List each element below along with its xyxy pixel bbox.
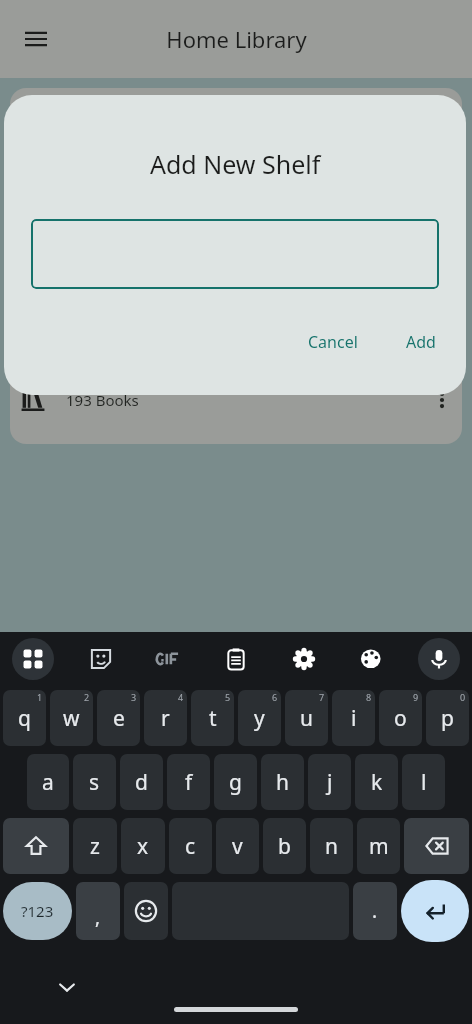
staticText: x	[137, 832, 149, 861]
button[interactable]: g	[214, 754, 257, 810]
button[interactable]: j	[308, 754, 351, 810]
staticText: 3	[131, 691, 137, 703]
button[interactable]: x	[121, 818, 165, 874]
button[interactable]: Backspace	[404, 818, 469, 874]
staticText: y	[254, 704, 265, 733]
button[interactable]: Themes	[350, 638, 392, 680]
button[interactable]: y	[238, 690, 281, 746]
button[interactable]: Settings	[283, 638, 325, 680]
staticText: r	[161, 704, 170, 733]
staticText: v	[232, 832, 243, 861]
button[interactable]: Voice input	[418, 638, 460, 680]
staticText: n	[325, 832, 338, 861]
button[interactable]: a	[27, 754, 69, 810]
staticText: 9	[413, 691, 419, 703]
button[interactable]: h	[261, 754, 304, 810]
staticText: m	[369, 832, 389, 861]
staticText: e	[113, 704, 125, 733]
button[interactable]: r	[144, 690, 187, 746]
button[interactable]: Shift	[3, 818, 69, 874]
button[interactable]: l	[402, 754, 445, 810]
staticText: 193 Books	[66, 390, 139, 410]
staticText: 6	[272, 691, 278, 703]
button[interactable]: z	[73, 818, 117, 874]
staticText: s	[89, 768, 100, 797]
staticText: o	[394, 704, 407, 733]
button[interactable]: t	[191, 690, 234, 746]
button[interactable]: u	[285, 690, 328, 746]
button[interactable]: w	[50, 690, 93, 746]
button[interactable]: m	[357, 818, 400, 874]
staticText: q	[18, 704, 31, 733]
button[interactable]: o	[379, 690, 422, 746]
button[interactable]: v	[216, 818, 259, 874]
staticText: 5	[225, 691, 231, 703]
button[interactable]: f	[167, 754, 210, 810]
staticText: f	[185, 768, 193, 797]
staticText: i	[351, 704, 357, 733]
staticText: 0	[460, 691, 466, 703]
staticText: Add New Shelf	[150, 147, 321, 181]
button[interactable]: Enter	[401, 880, 469, 942]
button[interactable]: 193 Books	[10, 88, 462, 444]
staticText: t	[209, 704, 217, 733]
button[interactable]: Clipboard	[215, 638, 257, 680]
staticText: p	[441, 704, 454, 733]
button[interactable]	[31, 219, 439, 289]
button[interactable]: Cancel	[300, 325, 366, 359]
staticText: k	[371, 768, 383, 797]
staticText: 4	[178, 691, 184, 703]
staticText: j	[327, 768, 333, 797]
button[interactable]: k	[355, 754, 398, 810]
button[interactable]: p	[426, 690, 469, 746]
button[interactable]: i	[332, 690, 375, 746]
button[interactable]: n	[310, 818, 353, 874]
staticText: Add	[406, 331, 436, 353]
button[interactable]: s	[73, 754, 116, 810]
button[interactable]: Stickers	[80, 638, 122, 680]
button[interactable]: e	[97, 690, 140, 746]
staticText: Home Library	[166, 24, 307, 54]
button[interactable]: .	[353, 882, 397, 940]
staticText: b	[278, 832, 291, 861]
staticText: g	[229, 768, 242, 797]
staticText: 8	[366, 691, 372, 703]
button[interactable]: Hide keyboard	[48, 968, 86, 1006]
staticText: .	[372, 898, 378, 924]
staticText: u	[300, 704, 313, 733]
button[interactable]: d	[120, 754, 163, 810]
button[interactable]: q	[3, 690, 46, 746]
button[interactable]: Add	[398, 325, 444, 359]
staticText: Cancel	[308, 331, 358, 353]
staticText: w	[63, 704, 80, 733]
staticText: c	[185, 832, 196, 861]
staticText: ?123	[21, 901, 54, 921]
button[interactable]: ,	[76, 882, 120, 940]
button[interactable]: Open navigation menu	[14, 17, 58, 61]
button[interactable]: Keyboard modes	[12, 638, 54, 680]
staticText: h	[276, 768, 289, 797]
button[interactable]: Emoji	[124, 882, 168, 940]
staticText: a	[42, 768, 54, 797]
staticText: 2	[84, 691, 90, 703]
staticText: ,	[95, 904, 101, 930]
button[interactable]: GIF	[147, 638, 189, 680]
staticText: z	[90, 832, 100, 861]
button[interactable]: b	[263, 818, 306, 874]
staticText: d	[135, 768, 148, 797]
button[interactable]: ?123	[3, 882, 72, 940]
staticText: 1	[37, 691, 43, 703]
button[interactable]: c	[169, 818, 212, 874]
button[interactable]: More options	[422, 380, 462, 420]
staticText: 7	[319, 691, 325, 703]
staticText: l	[421, 768, 427, 797]
